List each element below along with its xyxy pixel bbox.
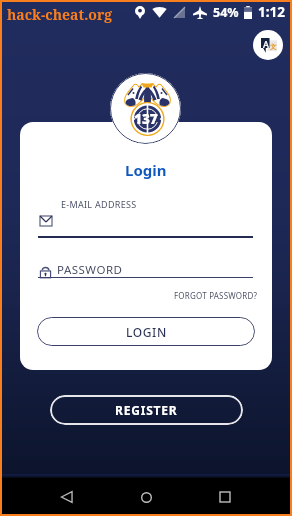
staticText: PASSWORD [57, 262, 123, 278]
staticText: 137 [134, 110, 158, 128]
staticText: LOGIN [126, 324, 167, 340]
button[interactable]: FORGOT PASSWORD? [174, 290, 258, 301]
staticText: Login [125, 160, 167, 180]
button[interactable]: REGISTER [50, 395, 243, 425]
button[interactable]: Translate [253, 30, 283, 60]
staticText: REGISTER [115, 402, 178, 418]
button[interactable]: Recent apps [210, 482, 240, 512]
staticText: 文 [270, 43, 277, 51]
staticText: 54% [213, 4, 239, 21]
staticText: E-MAIL ADDRESS [61, 198, 137, 210]
button[interactable]: Home [131, 482, 161, 512]
staticText: A [263, 38, 269, 50]
button[interactable]: Back [52, 482, 82, 512]
staticText: hack-cheat.org [7, 5, 113, 24]
button[interactable]: LOGIN [37, 317, 255, 346]
staticText: 1:12 [258, 3, 285, 21]
